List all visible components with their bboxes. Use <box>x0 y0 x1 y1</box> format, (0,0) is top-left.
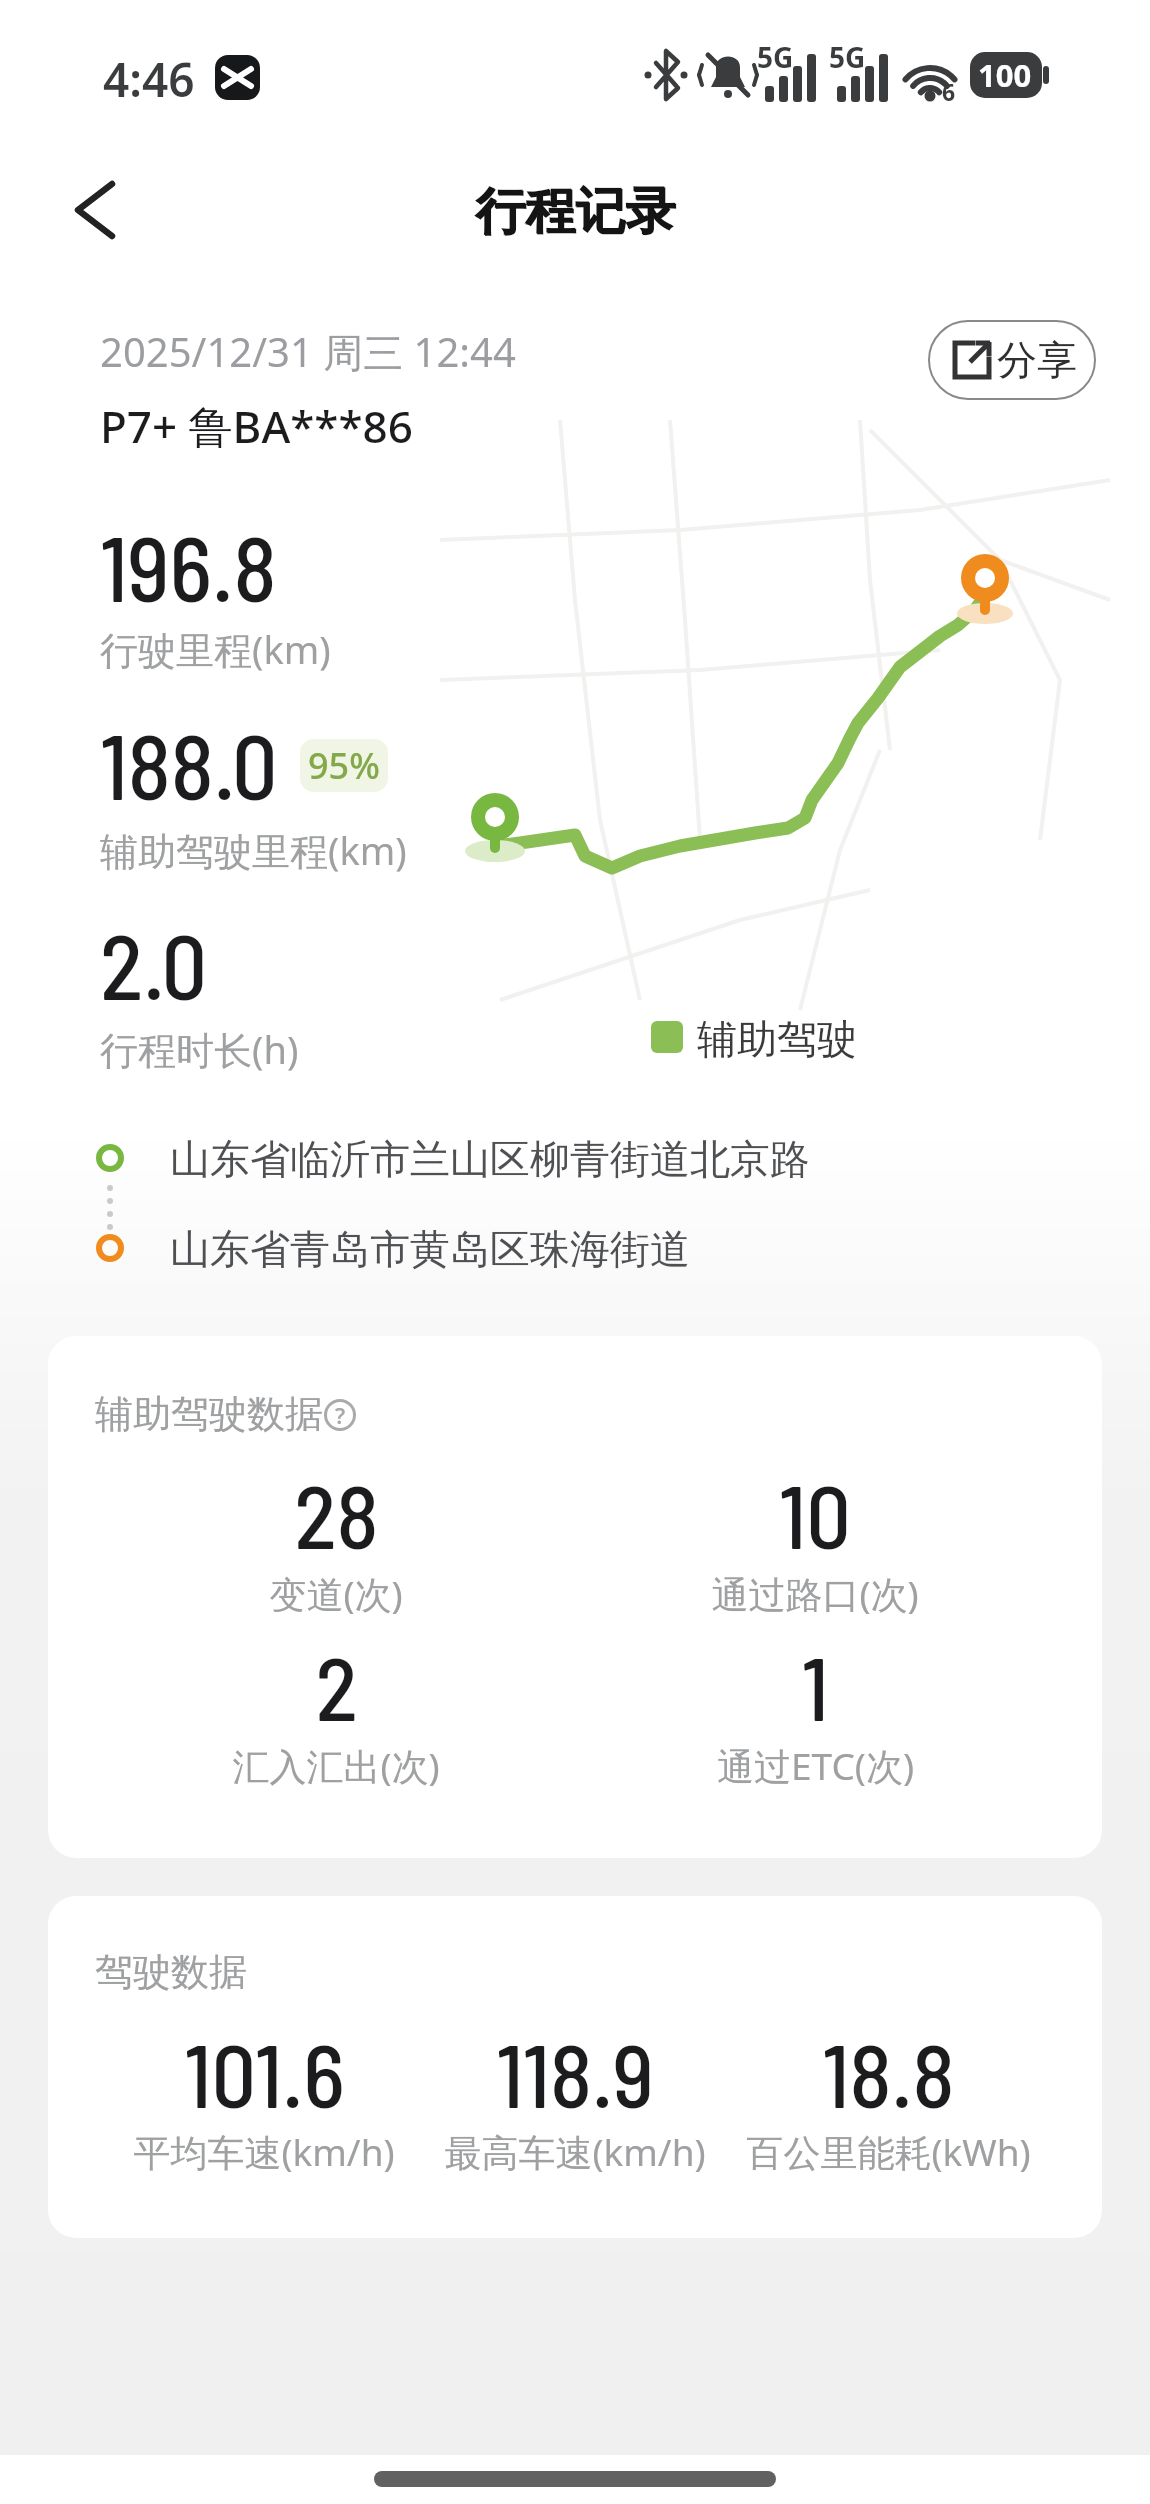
staticText: 行驶里程(km) <box>100 623 331 675</box>
staticText: 118.9 <box>496 2020 654 2126</box>
staticText: 95% <box>308 741 380 790</box>
staticText: 2025/12/31 周三 12:44 <box>100 324 516 379</box>
staticText: 5G <box>829 38 866 76</box>
staticText: 行程记录 <box>476 181 676 244</box>
staticText: 6 <box>942 76 956 107</box>
staticText: 变道(次) <box>269 1568 403 1619</box>
staticText: ? <box>335 1400 346 1430</box>
staticText: 1 <box>801 1633 829 1739</box>
staticText: 辅助驾驶数据 <box>95 1390 323 1438</box>
staticText: 100 <box>978 54 1032 96</box>
staticText: 4:46 <box>103 48 195 111</box>
staticText: 18.8 <box>822 2020 955 2126</box>
staticText: 2.0 <box>100 910 208 1018</box>
staticText: 山东省青岛市黄岛区珠海街道 <box>170 1224 690 1274</box>
staticText: 驾驶数据 <box>95 1948 247 1996</box>
staticText: 百公里能耗(kWh) <box>746 2126 1031 2177</box>
staticText: P7+ 鲁BA***86 <box>100 396 413 456</box>
staticText: 山东省临沂市兰山区柳青街道北京路 <box>170 1134 810 1184</box>
staticText: 分享 <box>997 335 1077 385</box>
staticText: 28 <box>294 1461 379 1567</box>
staticText: 2 <box>315 1633 358 1739</box>
button[interactable]: 分享 <box>928 320 1096 400</box>
staticText: 101.6 <box>184 2020 345 2126</box>
staticText: 辅助驾驶里程(km) <box>100 824 407 876</box>
staticText: 最高车速(km/h) <box>444 2126 706 2177</box>
staticText: 行程时长(h) <box>100 1023 299 1075</box>
staticText: 通过路口(次) <box>711 1568 919 1619</box>
staticText: 10 <box>779 1461 851 1567</box>
staticText: 行程记录 <box>475 180 675 243</box>
staticText: 汇入汇出(次) <box>232 1740 440 1791</box>
button[interactable] <box>60 180 130 240</box>
staticText: 通过ETC(次) <box>717 1740 914 1791</box>
staticText: 5G <box>757 38 794 76</box>
staticText: 辅助驾驶 <box>697 1014 857 1064</box>
staticText: 188.0 <box>100 710 278 818</box>
staticText: 平均车速(km/h) <box>133 2126 395 2177</box>
staticText: 196.8 <box>100 512 277 620</box>
